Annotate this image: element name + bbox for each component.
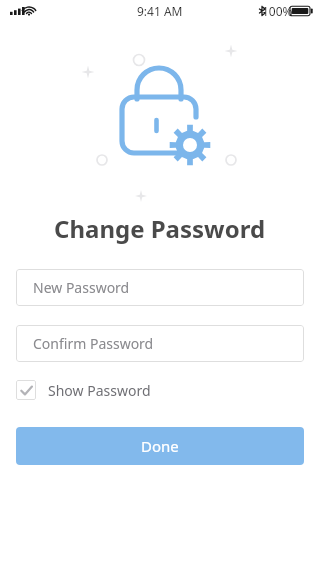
staticText: 9:41 AM [137, 3, 183, 19]
other: Status bar [0, 0, 320, 22]
button[interactable]: Done [16, 427, 304, 465]
staticText: New Password [33, 278, 130, 297]
staticText: Confirm Password [33, 334, 154, 353]
button[interactable]: New Password [16, 269, 304, 306]
staticText: Done [141, 436, 179, 456]
button[interactable]: Show Password [16, 380, 151, 400]
staticText: Change Password [54, 212, 266, 245]
button[interactable]: Confirm Password [16, 325, 304, 362]
staticText: 100% [262, 3, 293, 19]
staticText: Show Password [48, 381, 151, 400]
